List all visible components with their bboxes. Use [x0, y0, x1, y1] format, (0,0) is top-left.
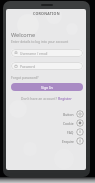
- staticText: Password: [20, 64, 35, 68]
- other: Cookie: [76, 119, 84, 127]
- staticText: Cookie: [63, 121, 74, 125]
- button[interactable]: FAQ: [67, 128, 84, 136]
- staticText: Forgot password?: [11, 75, 39, 79]
- button[interactable]: Password: [14, 62, 80, 70]
- staticText: Enter details to log into your account: [11, 39, 69, 43]
- staticText: Enquire: [62, 139, 74, 143]
- other: FAQ: [76, 128, 84, 136]
- button[interactable]: Sign In: [11, 83, 83, 91]
- button[interactable]: Cookie: [63, 119, 84, 127]
- button[interactable]: Button: [63, 110, 84, 118]
- button[interactable]: Register: [58, 96, 72, 100]
- staticText: CORONATION: [33, 11, 60, 16]
- button[interactable]: Forgot password?: [11, 75, 39, 79]
- staticText: FAQ: [67, 130, 74, 134]
- button[interactable]: Username / email: [14, 49, 80, 57]
- staticText: Username / email: [20, 51, 48, 55]
- other: Button: [76, 110, 84, 118]
- staticText: Welcome: [11, 31, 36, 39]
- other: Enquire: [76, 137, 84, 145]
- button[interactable]: Enquire: [62, 137, 84, 145]
- staticText: Button: [63, 112, 74, 116]
- staticText: Don't have an account?: [21, 96, 58, 100]
- staticText: Sign In: [41, 85, 53, 90]
- staticText: Register: [58, 96, 72, 100]
